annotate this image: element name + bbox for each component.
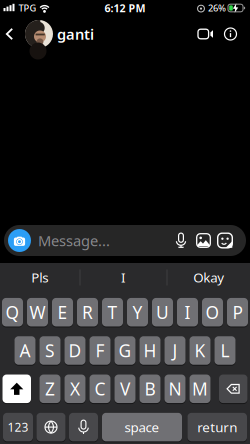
button[interactable]: Okay: [167, 263, 250, 292]
staticText: J: [172, 339, 177, 362]
button[interactable]: 123: [3, 413, 33, 441]
button[interactable]: Stickers: [217, 232, 233, 248]
button[interactable]: O: [202, 298, 223, 326]
button[interactable]: Next keyboard: [36, 413, 65, 441]
staticText: 26%: [208, 2, 226, 14]
staticText: R: [82, 301, 93, 324]
button[interactable]: Photo library: [196, 233, 211, 248]
button[interactable]: return: [187, 413, 247, 441]
staticText: P: [232, 301, 242, 324]
button[interactable]: G: [114, 336, 135, 365]
staticText: D: [68, 339, 81, 362]
staticText: H: [143, 339, 156, 362]
staticText: O: [205, 301, 219, 324]
button[interactable]: Details: [224, 27, 237, 40]
button[interactable]: S: [39, 336, 60, 365]
button[interactable]: H: [139, 336, 160, 365]
button[interactable]: R: [77, 298, 98, 326]
button[interactable]: L: [214, 336, 235, 365]
button[interactable]: Y: [127, 298, 148, 326]
staticText: W: [29, 301, 45, 324]
staticText: Pls: [31, 269, 48, 286]
button[interactable]: V: [114, 374, 135, 403]
button[interactable]: Shift: [2, 374, 31, 403]
staticText: N: [168, 377, 181, 400]
staticText: V: [120, 377, 130, 400]
button[interactable]: U: [152, 298, 173, 326]
staticText: I: [184, 301, 190, 324]
button[interactable]: Pls: [0, 263, 79, 292]
button[interactable]: C: [89, 374, 110, 403]
staticText: return: [197, 418, 237, 436]
staticText: space: [124, 418, 159, 436]
staticText: L: [220, 339, 229, 362]
button[interactable]: E: [52, 298, 73, 326]
button[interactable]: J: [164, 336, 185, 365]
staticText: X: [70, 377, 80, 400]
button[interactable]: D: [64, 336, 85, 365]
button[interactable]: M: [189, 374, 210, 403]
button[interactable]: Voice message: [175, 232, 187, 248]
button[interactable]: P: [227, 298, 248, 326]
button[interactable]: F: [89, 336, 110, 365]
staticText: Message...: [38, 231, 110, 250]
button[interactable]: I: [80, 263, 166, 292]
button[interactable]: K: [189, 336, 210, 365]
button[interactable]: Camera: [8, 229, 31, 252]
button[interactable]: Delete: [219, 374, 247, 403]
button[interactable]: A: [14, 336, 35, 365]
staticText: I: [121, 269, 126, 286]
staticText: 6:12 PM: [104, 1, 145, 15]
button[interactable]: Dictate: [69, 413, 98, 441]
button[interactable]: space: [102, 413, 182, 441]
staticText: T: [107, 301, 117, 324]
button[interactable]: ganti: [25, 20, 94, 48]
staticText: K: [194, 339, 205, 362]
staticText: F: [95, 339, 104, 362]
staticText: Y: [132, 301, 142, 324]
button[interactable]: N: [164, 374, 185, 403]
staticText: Z: [45, 377, 55, 400]
button[interactable]: X: [64, 374, 85, 403]
staticText: U: [156, 301, 169, 324]
button[interactable]: W: [27, 298, 48, 326]
staticText: TPG: [18, 2, 36, 14]
button[interactable]: Back: [4, 27, 15, 41]
staticText: E: [57, 301, 67, 324]
staticText: G: [118, 339, 131, 362]
staticText: Okay: [193, 269, 224, 286]
staticText: 123: [7, 419, 28, 435]
staticText: Q: [5, 301, 19, 324]
staticText: B: [144, 377, 155, 400]
staticText: A: [19, 339, 30, 362]
staticText: C: [94, 377, 105, 400]
button[interactable]: I: [177, 298, 198, 326]
button[interactable]: Q: [2, 298, 23, 326]
button[interactable]: B: [139, 374, 160, 403]
button[interactable]: Z: [39, 374, 60, 403]
staticText: S: [45, 339, 55, 362]
staticText: M: [192, 377, 208, 400]
button[interactable]: Video call: [198, 28, 214, 40]
staticText: ganti: [57, 24, 94, 44]
button[interactable]: T: [102, 298, 123, 326]
button[interactable]: Message...: [38, 231, 110, 250]
